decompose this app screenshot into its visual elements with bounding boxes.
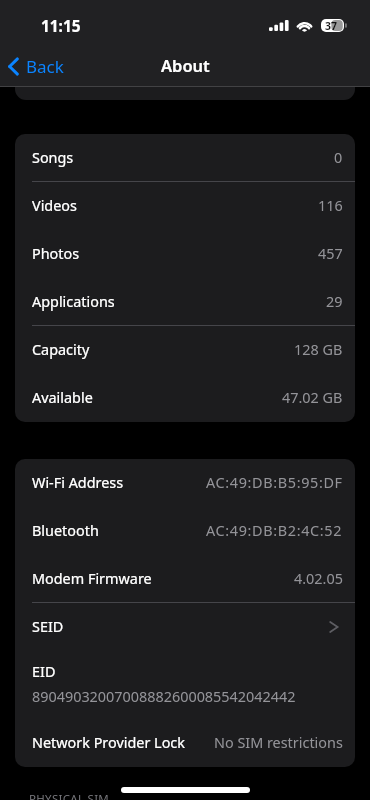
staticText: 0 xyxy=(334,148,343,168)
staticText: EID xyxy=(32,662,56,682)
staticText: About xyxy=(161,54,210,76)
button[interactable]: Modem Firmware xyxy=(15,555,355,603)
staticText: 457 xyxy=(318,244,343,264)
button[interactable]: Network Provider Lock xyxy=(15,719,355,767)
staticText: 11:15 xyxy=(41,16,81,37)
button[interactable]: Bluetooth xyxy=(15,507,355,555)
button[interactable]: SEID xyxy=(15,603,355,651)
button[interactable]: Wi-Fi Address xyxy=(15,459,355,507)
button[interactable]: Applications xyxy=(15,278,355,326)
button[interactable]: Back xyxy=(5,52,66,81)
button[interactable]: Photos xyxy=(15,230,355,278)
staticText: 29 xyxy=(326,292,343,312)
staticText: Available xyxy=(32,388,93,408)
staticText: Songs xyxy=(32,148,74,168)
staticText: No SIM restrictions xyxy=(214,733,343,753)
staticText: Wi-Fi Address xyxy=(32,473,124,493)
staticText: 128 GB xyxy=(294,340,343,360)
staticText: Bluetooth xyxy=(32,521,99,541)
staticText: Modem Firmware xyxy=(32,569,152,589)
staticText: Back xyxy=(26,55,64,78)
staticText: Applications xyxy=(32,292,115,312)
staticText: 37 xyxy=(325,19,338,32)
staticText: 116 xyxy=(318,196,343,216)
staticText: Videos xyxy=(32,196,77,216)
staticText: PHYSICAL SIM xyxy=(29,791,110,800)
button[interactable]: Available xyxy=(15,374,355,422)
staticText: Photos xyxy=(32,244,80,264)
button[interactable]: Songs xyxy=(15,134,355,182)
staticText: AC:49:DB:B5:95:DF xyxy=(206,473,343,493)
staticText: Capacity xyxy=(32,340,90,360)
staticText: AC:49:DB:B2:4C:52 xyxy=(206,521,343,541)
button[interactable]: Videos xyxy=(15,182,355,230)
staticText: SEID xyxy=(32,617,64,637)
button[interactable]: Capacity xyxy=(15,326,355,374)
staticText: 4.02.05 xyxy=(294,569,343,589)
staticText: Network Provider Lock xyxy=(32,733,185,753)
button[interactable]: EID xyxy=(15,651,355,719)
staticText: 89049032007008882600085542042442 xyxy=(32,687,296,707)
staticText: 47.02 GB xyxy=(282,388,343,408)
